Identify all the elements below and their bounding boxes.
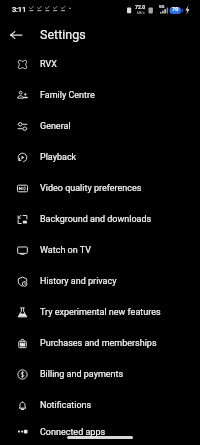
staticText: Connected apps: [40, 427, 106, 438]
button[interactable]: RVX: [0, 49, 200, 80]
button[interactable]: General: [0, 111, 200, 142]
staticText: Settings: [40, 27, 86, 42]
button[interactable]: Watch on TV: [0, 235, 200, 266]
button[interactable]: Purchases and memberships: [0, 328, 200, 359]
button[interactable]: Back: [4, 23, 28, 47]
button[interactable]: Playback: [0, 142, 200, 173]
staticText: Video quality preferences: [40, 183, 142, 194]
staticText: Billing and payments: [40, 369, 124, 380]
button[interactable]: Notifications: [0, 390, 200, 421]
button[interactable]: Video quality preferences: [0, 173, 200, 204]
staticText: Try experimental new features: [40, 307, 161, 318]
button[interactable]: Try experimental new features: [0, 297, 200, 328]
button[interactable]: Background and downloads: [0, 204, 200, 235]
button[interactable]: History and privacy: [0, 266, 200, 297]
staticText: General: [40, 121, 71, 132]
staticText: kB/s: [137, 10, 145, 14]
button[interactable]: Billing and payments: [0, 359, 200, 390]
button[interactable]: Connected apps: [0, 421, 200, 443]
staticText: Purchases and memberships: [40, 338, 157, 349]
staticText: 70: [172, 6, 179, 13]
staticText: Background and downloads: [40, 214, 152, 225]
staticText: History and privacy: [40, 276, 117, 287]
staticText: 72.0: [135, 4, 146, 10]
staticText: Watch on TV: [40, 245, 91, 256]
staticText: Notifications: [40, 400, 92, 411]
staticText: 5G: [159, 4, 165, 9]
staticText: Family Centre: [40, 90, 95, 101]
staticText: Playback: [40, 152, 77, 163]
staticText: RVX: [40, 59, 57, 70]
staticText: 3:11: [12, 5, 26, 14]
button[interactable]: Family Centre: [0, 80, 200, 111]
